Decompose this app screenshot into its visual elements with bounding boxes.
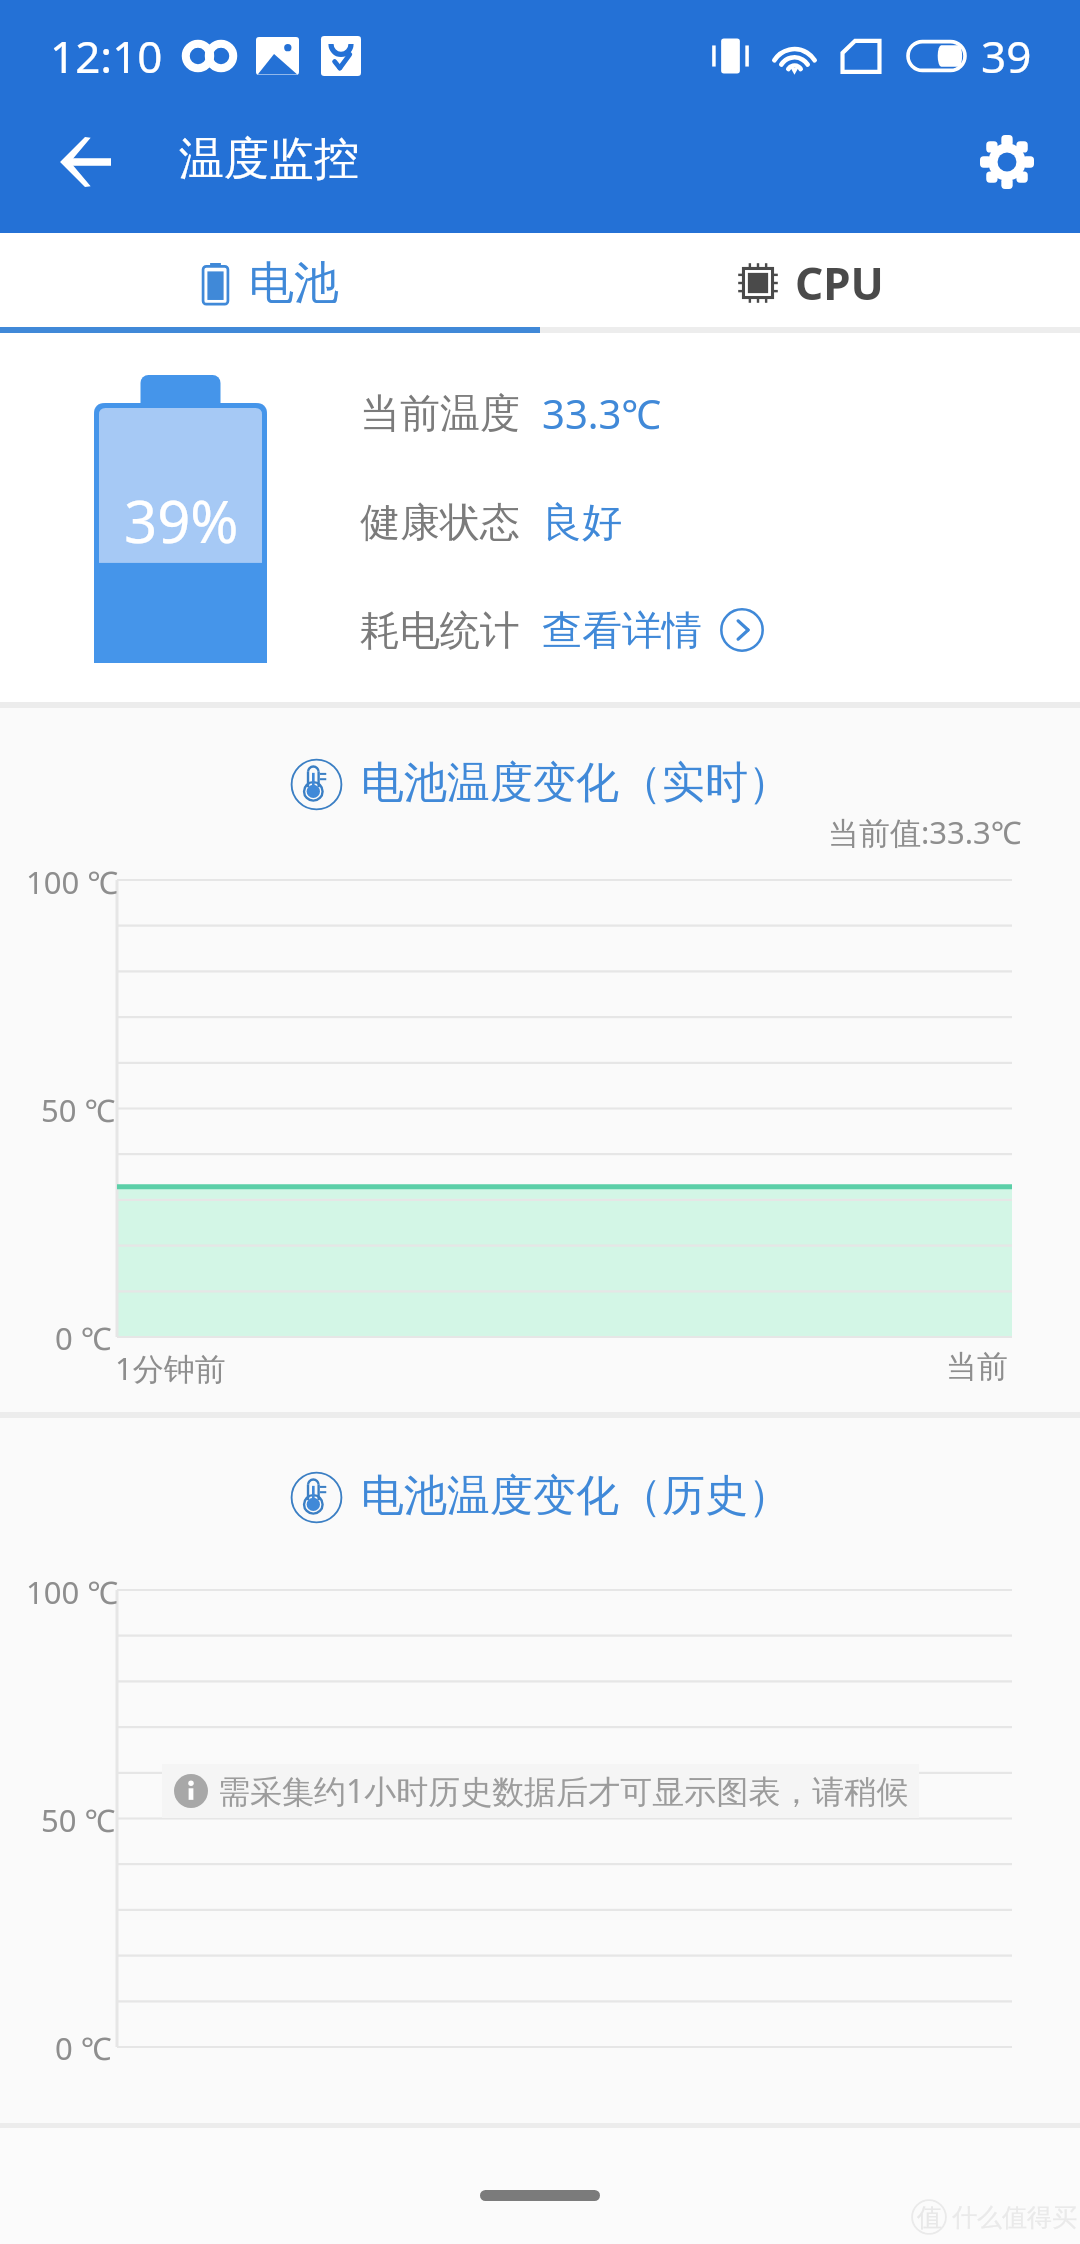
staticText: 查看详情 — [542, 605, 702, 655]
staticText: 健康状态 — [360, 497, 520, 547]
staticText: 50 ℃ — [41, 1089, 116, 1131]
staticText: 良好 — [542, 497, 622, 547]
staticText: 需采集约1小时历史数据后才可显示图表，请稍候 — [218, 1769, 909, 1813]
button[interactable]: Settings — [952, 107, 1062, 217]
staticText: 1分钟前 — [115, 1347, 226, 1389]
staticText: 电池 — [249, 255, 339, 312]
button[interactable]: CPU — [540, 233, 1080, 327]
staticText: 当前 — [946, 1347, 1008, 1386]
staticText: 0 ℃ — [55, 1317, 112, 1359]
staticText: 耗电统计 — [360, 605, 520, 655]
staticText: CPU — [795, 253, 884, 313]
button[interactable]: 电池 — [0, 233, 540, 327]
button[interactable]: 耗电统计 — [360, 605, 764, 655]
staticText: 100 ℃ — [26, 861, 119, 903]
staticText: 12:10 — [50, 26, 163, 86]
staticText: 33.3℃ — [542, 386, 662, 440]
staticText: 什么值得买 — [952, 2202, 1077, 2233]
staticText: 温度监控 — [179, 131, 359, 188]
staticText: 100 ℃ — [26, 1571, 119, 1613]
button[interactable]: Back — [30, 107, 140, 217]
staticText: 电池温度变化（历史） — [361, 1469, 791, 1523]
staticText: 39 — [981, 26, 1032, 86]
staticText: 值 — [917, 2202, 942, 2233]
staticText: 50 ℃ — [41, 1799, 116, 1841]
staticText: 39% — [124, 481, 239, 560]
staticText: 当前值:33.3℃ — [828, 811, 1022, 853]
staticText: 电池温度变化（实时） — [361, 756, 791, 810]
staticText: 0 ℃ — [55, 2027, 112, 2069]
staticText: 当前温度 — [360, 388, 520, 438]
